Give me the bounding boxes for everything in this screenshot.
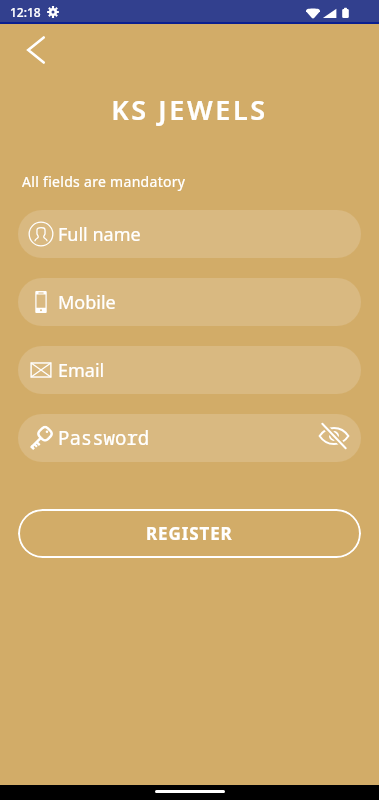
button[interactable]: Password	[18, 414, 361, 462]
button[interactable]: Back	[14, 28, 58, 72]
button[interactable]: Mobile	[18, 278, 361, 326]
button[interactable]: Full name	[18, 210, 361, 258]
button[interactable]: REGISTER	[18, 509, 361, 558]
button[interactable]: Email	[18, 346, 361, 394]
button[interactable]: Show password	[312, 416, 356, 460]
staticText: Mobile	[58, 290, 116, 315]
staticText: 12:18	[10, 4, 41, 20]
staticText: Password	[58, 425, 150, 451]
staticText: All fields are mandatory	[22, 172, 186, 191]
staticText: Full name	[58, 222, 141, 247]
staticText: KS JEWELS	[0, 91, 379, 128]
staticText: Email	[58, 358, 105, 383]
staticText: REGISTER	[146, 522, 233, 545]
